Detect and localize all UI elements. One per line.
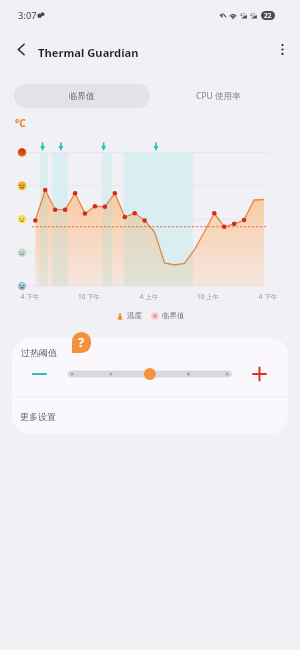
staticText: 温度 xyxy=(127,311,142,320)
staticText: 临界值 xyxy=(162,311,185,320)
staticText: 22 xyxy=(264,11,272,20)
staticText: 更多设置 xyxy=(20,411,56,422)
button[interactable]: More options xyxy=(269,36,295,62)
staticText: Thermal Guardian xyxy=(38,45,139,60)
staticText: 4G xyxy=(240,12,246,18)
staticText: 4 上午 xyxy=(131,292,167,301)
staticText: 4 下午 xyxy=(250,292,286,301)
staticText: 临界值 xyxy=(69,91,95,102)
staticText: 10 上午 xyxy=(190,292,226,301)
staticText: °C xyxy=(15,116,26,130)
staticText: CPU 使用率 xyxy=(196,90,241,102)
staticText: 过热阈值 xyxy=(21,347,57,358)
staticText: 4G xyxy=(250,12,256,18)
staticText: 10 下午 xyxy=(71,292,107,301)
button[interactable] xyxy=(12,397,288,434)
button[interactable]: CPU 使用率 xyxy=(150,84,286,108)
staticText: 3:07 xyxy=(18,9,37,22)
button[interactable]: Back xyxy=(8,36,34,62)
button[interactable]: 临界值 xyxy=(14,84,150,108)
staticText: ? xyxy=(78,333,85,351)
staticText: 4 下午 xyxy=(12,292,48,301)
button[interactable] xyxy=(12,338,288,397)
